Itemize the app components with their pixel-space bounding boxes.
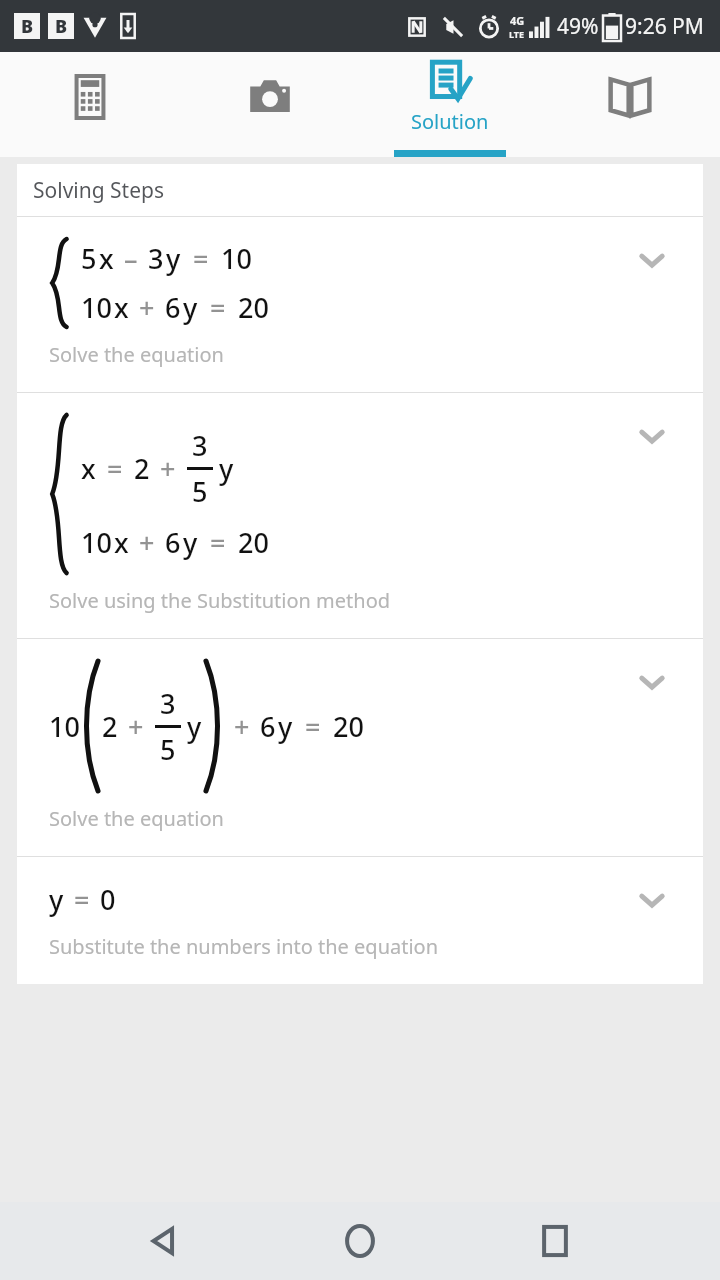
staticText: 10: [49, 708, 80, 745]
staticText: Solve using the Substitution method: [49, 587, 391, 614]
staticText: 2: [134, 450, 150, 487]
staticText: y: [278, 708, 293, 745]
staticText: 5: [160, 731, 176, 768]
staticText: +: [139, 524, 155, 561]
staticText: +: [139, 289, 155, 326]
button[interactable]: y: [17, 857, 703, 984]
staticText: Substitute the numbers into the equation: [49, 933, 439, 960]
button[interactable]: Solution: [360, 52, 540, 157]
staticText: y: [219, 450, 234, 487]
button[interactable]: Expand step: [637, 245, 667, 275]
staticText: 6: [165, 289, 181, 326]
button[interactable]: Dictionary: [540, 52, 720, 157]
staticText: 10: [81, 289, 112, 326]
staticText: 20: [238, 524, 269, 561]
staticText: =: [74, 881, 90, 918]
staticText: y: [166, 240, 181, 277]
button[interactable]: Solving Steps: [17, 164, 703, 216]
staticText: y: [49, 881, 64, 918]
button[interactable]: Expand step: [637, 885, 667, 915]
staticText: Solve the equation: [49, 341, 224, 368]
staticText: =: [193, 240, 209, 277]
button[interactable]: Expand step: [637, 421, 667, 451]
staticText: 9:26 PM: [625, 12, 704, 41]
staticText: B: [21, 14, 34, 39]
staticText: 10: [221, 240, 252, 277]
staticText: x: [114, 524, 129, 561]
staticText: Solution: [411, 108, 489, 135]
staticText: y: [183, 524, 198, 561]
staticText: 4G: [510, 13, 525, 28]
staticText: 20: [333, 708, 364, 745]
staticText: =: [107, 450, 123, 487]
button[interactable]: 5: [17, 217, 703, 392]
staticText: x: [81, 450, 96, 487]
staticText: 3: [160, 685, 176, 722]
staticText: 6: [165, 524, 181, 561]
staticText: –: [124, 240, 138, 277]
staticText: 2: [102, 708, 118, 745]
staticText: 3: [192, 427, 208, 464]
staticText: 10: [81, 524, 112, 561]
staticText: 20: [238, 289, 269, 326]
button[interactable]: Calculator: [0, 52, 180, 157]
staticText: +: [128, 708, 144, 745]
staticText: LTE: [509, 28, 525, 40]
staticText: x: [99, 240, 114, 277]
staticText: 49%: [557, 12, 599, 41]
staticText: Solve the equation: [49, 805, 224, 832]
staticText: 0: [100, 881, 116, 918]
button[interactable]: 10: [17, 639, 703, 856]
staticText: 3: [148, 240, 164, 277]
staticText: 5: [81, 240, 97, 277]
staticText: y: [183, 289, 198, 326]
staticText: =: [305, 708, 321, 745]
staticText: B: [55, 14, 68, 39]
staticText: y: [187, 708, 202, 745]
staticText: Solving Steps: [33, 176, 165, 205]
staticText: 6: [260, 708, 276, 745]
button[interactable]: Camera: [180, 52, 360, 157]
button[interactable]: Back: [135, 1211, 195, 1271]
staticText: +: [160, 450, 176, 487]
button[interactable]: Expand step: [637, 667, 667, 697]
button[interactable]: x: [17, 393, 703, 638]
staticText: 5: [192, 473, 208, 510]
staticText: x: [114, 289, 129, 326]
staticText: +: [234, 708, 250, 745]
button[interactable]: Recents: [525, 1211, 585, 1271]
button[interactable]: Home: [330, 1211, 390, 1271]
staticText: =: [210, 524, 226, 561]
staticText: =: [210, 289, 226, 326]
